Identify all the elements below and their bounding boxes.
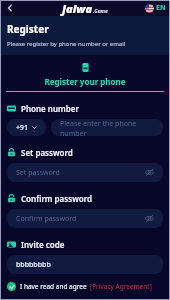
staticText: Please register by phone number or email xyxy=(7,40,126,48)
staticText: +91 xyxy=(16,123,29,133)
staticText: Set password xyxy=(21,147,73,158)
button[interactable]: Set password xyxy=(7,163,163,182)
other: Toggle password visibility xyxy=(145,214,154,223)
staticText: Jalwa xyxy=(62,1,93,16)
staticText: Set password xyxy=(16,168,145,178)
staticText: Confirm password xyxy=(21,193,93,204)
button[interactable]: bbbbbbbb xyxy=(7,255,163,274)
button[interactable]: I have read and agree xyxy=(7,282,163,291)
staticText: Phone number xyxy=(21,103,79,114)
button[interactable]: [Privacy Agreement] xyxy=(90,282,152,291)
staticText: bbbbbbbb xyxy=(16,260,51,270)
staticText: Register your phone xyxy=(44,76,126,87)
button[interactable]: Please enter the phone number xyxy=(51,119,163,136)
button[interactable]: Register your phone xyxy=(0,62,170,92)
staticText: Invite code xyxy=(21,239,65,250)
staticText: Register xyxy=(7,22,49,36)
staticText: Confirm password xyxy=(16,214,145,224)
button[interactable]: Confirm password xyxy=(7,209,163,228)
staticText: .Game xyxy=(93,8,108,15)
staticText: I have read and agree xyxy=(20,282,87,291)
button[interactable]: Back xyxy=(3,1,17,15)
button[interactable]: +91 xyxy=(7,119,46,136)
staticText: Please enter the phone number xyxy=(60,119,154,136)
staticText: EN xyxy=(156,3,166,13)
button[interactable]: EN xyxy=(145,3,166,13)
other: Toggle password visibility xyxy=(145,168,154,177)
